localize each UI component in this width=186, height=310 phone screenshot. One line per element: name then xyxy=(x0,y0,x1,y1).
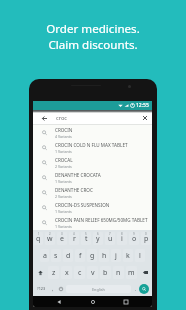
staticText: u xyxy=(108,234,113,244)
button[interactable]: v xyxy=(87,266,98,279)
button[interactable]: z xyxy=(48,266,59,279)
button[interactable]: CROCAL xyxy=(33,155,152,170)
button[interactable]: Emoji xyxy=(56,281,65,296)
staticText: CROCIN-DS SUSPENSION xyxy=(55,202,110,208)
staticText: i xyxy=(121,234,123,244)
staticText: 1 Variants xyxy=(55,179,72,184)
staticText: 1 Variants xyxy=(55,224,72,229)
staticText: a xyxy=(43,251,47,261)
button[interactable]: k xyxy=(123,249,133,262)
staticText: s xyxy=(54,251,58,261)
button[interactable]: l xyxy=(135,249,145,262)
button[interactable]: j xyxy=(111,249,121,262)
staticText: 9 xyxy=(133,232,135,236)
button[interactable]: ?123 xyxy=(33,281,49,296)
staticText: . xyxy=(135,286,137,292)
staticText: n xyxy=(116,268,121,278)
button[interactable]: o xyxy=(129,232,139,245)
staticText: 2 Variants xyxy=(55,194,72,199)
staticText: q xyxy=(36,234,41,244)
staticText: m xyxy=(128,268,135,278)
button[interactable]: CROCIN COLD N FLU MAX TABLET xyxy=(33,140,152,155)
staticText: l xyxy=(139,251,141,261)
staticText: p xyxy=(144,234,149,244)
staticText: 4 Variants xyxy=(55,134,72,139)
button[interactable]: Period xyxy=(132,281,139,296)
staticText: 3 xyxy=(61,232,63,236)
staticText: 4 xyxy=(73,232,75,236)
button[interactable]: x xyxy=(61,266,72,279)
staticText: Order medicines. xyxy=(46,21,140,37)
staticText: CROCIN xyxy=(55,127,73,133)
staticText: k xyxy=(126,251,130,261)
staticText: DENANTHE CROCATA xyxy=(55,172,101,178)
button[interactable]: Shift xyxy=(33,264,47,281)
staticText: j xyxy=(115,251,117,261)
button[interactable]: Home xyxy=(86,296,100,307)
button[interactable]: DENANTHE CROC xyxy=(33,185,152,200)
button[interactable]: g xyxy=(87,249,97,262)
staticText: croc xyxy=(56,114,139,122)
staticText: o xyxy=(132,234,137,244)
staticText: f xyxy=(79,251,82,261)
button[interactable]: English xyxy=(66,285,131,293)
staticText: 1 Variants xyxy=(55,209,72,214)
staticText: y xyxy=(96,234,100,244)
button[interactable]: h xyxy=(99,249,109,262)
staticText: w xyxy=(47,234,53,244)
button[interactable]: Clear search xyxy=(138,111,152,125)
button[interactable]: t xyxy=(81,232,91,245)
button[interactable]: DENANTHE CROCATA xyxy=(33,170,152,185)
button[interactable]: CROCIN PAIN RELIEF 650MG/50MG TABLET xyxy=(33,215,152,230)
staticText: 0 xyxy=(145,232,147,236)
staticText: t xyxy=(85,234,88,244)
button[interactable]: CROCIN-DS SUSPENSION xyxy=(33,200,152,215)
staticText: 2 Variants xyxy=(55,164,72,169)
button[interactable]: q xyxy=(34,232,43,245)
staticText: 5 xyxy=(85,232,87,236)
button[interactable]: u xyxy=(105,232,115,245)
button[interactable]: Backspace xyxy=(138,264,152,281)
button[interactable]: i xyxy=(117,232,127,245)
staticText: h xyxy=(102,251,107,261)
staticText: 7 xyxy=(109,232,111,236)
staticText: 6 xyxy=(97,232,99,236)
staticText: v xyxy=(91,268,95,278)
button[interactable]: e xyxy=(57,232,67,245)
button[interactable]: d xyxy=(63,249,73,262)
staticText: DENANTHE CROC xyxy=(55,187,93,193)
button[interactable]: s xyxy=(51,249,61,262)
staticText: CROCIN COLD N FLU MAX TABLET xyxy=(55,142,128,148)
button[interactable]: Back xyxy=(33,111,55,125)
staticText: g xyxy=(90,251,95,261)
staticText: d xyxy=(66,251,71,261)
staticText: 8 xyxy=(121,232,123,236)
staticText: z xyxy=(52,268,56,278)
staticText: English xyxy=(92,287,105,292)
staticText: Claim discounts. xyxy=(48,37,138,53)
button[interactable]: b xyxy=(100,266,111,279)
button[interactable]: Recent apps xyxy=(119,296,133,307)
button[interactable]: Back xyxy=(52,296,66,307)
button[interactable]: a xyxy=(40,249,49,262)
button[interactable]: n xyxy=(113,266,124,279)
staticText: 1 Variants xyxy=(55,149,72,154)
staticText: b xyxy=(103,268,108,278)
staticText: , xyxy=(52,286,54,292)
staticText: ?123 xyxy=(37,286,46,291)
button[interactable]: f xyxy=(75,249,85,262)
staticText: r xyxy=(73,234,76,244)
button[interactable]: Search xyxy=(139,284,149,294)
button[interactable]: y xyxy=(93,232,103,245)
button[interactable]: CROCIN xyxy=(33,125,152,140)
staticText: 12:55 xyxy=(136,102,149,109)
button[interactable]: r xyxy=(69,232,79,245)
staticText: 1 xyxy=(38,232,40,236)
button[interactable]: c xyxy=(74,266,85,279)
button[interactable]: w xyxy=(45,232,55,245)
button[interactable]: p xyxy=(141,232,151,245)
staticText: 2 xyxy=(49,232,51,236)
button[interactable]: Comma xyxy=(49,281,56,296)
staticText: c xyxy=(78,268,82,278)
button[interactable]: m xyxy=(126,266,137,279)
